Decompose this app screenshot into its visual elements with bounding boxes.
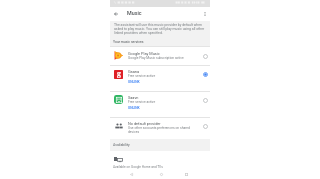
button[interactable]: More options	[200, 8, 210, 20]
button[interactable]: No default provider	[110, 118, 210, 139]
button[interactable]: Select Saavn	[200, 95, 210, 105]
button[interactable]: UNLINK	[128, 106, 140, 110]
staticText: Saavn	[128, 95, 139, 100]
staticText: Free service active	[128, 74, 156, 78]
button[interactable]: g	[110, 66, 210, 92]
staticText: Available on Google Home and TVs	[113, 165, 163, 169]
button[interactable]: Saavn	[110, 92, 210, 118]
staticText: Google Play Music subscription active	[128, 56, 184, 60]
staticText: Use other accounts preferences on shared…	[128, 126, 191, 134]
staticText: Your music services	[113, 40, 144, 44]
button[interactable]: Navigate up	[111, 8, 121, 20]
staticText: Gaana	[128, 69, 140, 74]
staticText: No default provider	[128, 121, 161, 126]
button[interactable]: Recent apps	[181, 169, 191, 179]
button[interactable]: Select No default provider	[200, 121, 210, 131]
button[interactable]: Google Play Music	[110, 47, 210, 65]
button[interactable]: UNLINK	[128, 80, 140, 84]
staticText: g	[117, 70, 121, 78]
button[interactable]: Select Google Play Music	[200, 51, 210, 61]
button[interactable]: Select Gaana	[200, 69, 210, 79]
staticText: Availability	[113, 143, 130, 147]
staticText: Music	[127, 10, 142, 16]
staticText: The assistant will use this music provid…	[114, 23, 205, 35]
staticText: Free service active	[128, 100, 156, 104]
staticText: Google Play Music	[128, 51, 160, 56]
button[interactable]: Home	[156, 169, 166, 179]
button[interactable]: Back	[126, 169, 136, 179]
